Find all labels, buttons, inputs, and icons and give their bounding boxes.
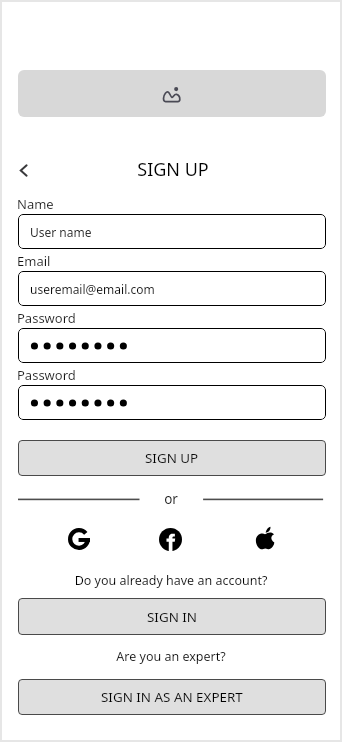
button[interactable]: useremail@email.com bbox=[18, 271, 326, 306]
button[interactable] bbox=[18, 385, 326, 420]
staticText: Do you already have an account? bbox=[0, 572, 342, 589]
staticText: Email bbox=[17, 252, 51, 270]
button[interactable]: SIGN IN AS AN EXPERT bbox=[18, 679, 326, 715]
button[interactable]: Add photo bbox=[18, 70, 326, 117]
staticText: useremail@email.com bbox=[30, 281, 155, 297]
staticText: Name bbox=[17, 195, 54, 213]
staticText: SIGN UP bbox=[2, 157, 342, 182]
button[interactable]: Sign up with Apple bbox=[253, 526, 277, 550]
staticText: or bbox=[0, 490, 342, 508]
button[interactable]: Back bbox=[11, 158, 35, 182]
button[interactable]: Sign up with Facebook bbox=[159, 528, 182, 551]
button[interactable]: SIGN IN bbox=[18, 598, 326, 635]
staticText: SIGN IN AS AN EXPERT bbox=[101, 688, 243, 706]
button[interactable]: Sign up with Google bbox=[68, 528, 90, 550]
staticText: SIGN IN bbox=[147, 608, 198, 626]
staticText: Are you an expert? bbox=[0, 648, 342, 665]
button[interactable]: SIGN UP bbox=[18, 440, 326, 476]
staticText: User name bbox=[30, 224, 92, 240]
button[interactable] bbox=[18, 328, 326, 363]
staticText: Password bbox=[17, 309, 76, 327]
button[interactable]: User name bbox=[18, 214, 326, 249]
staticText: SIGN UP bbox=[145, 449, 199, 467]
staticText: Password bbox=[17, 366, 76, 384]
